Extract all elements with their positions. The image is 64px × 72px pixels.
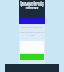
staticText: Save your favorite questions for easy re… xyxy=(20,1,44,10)
staticText: Bookmark questions xyxy=(19,26,45,29)
staticText: Keep track of the ones you want xyxy=(19,31,45,37)
